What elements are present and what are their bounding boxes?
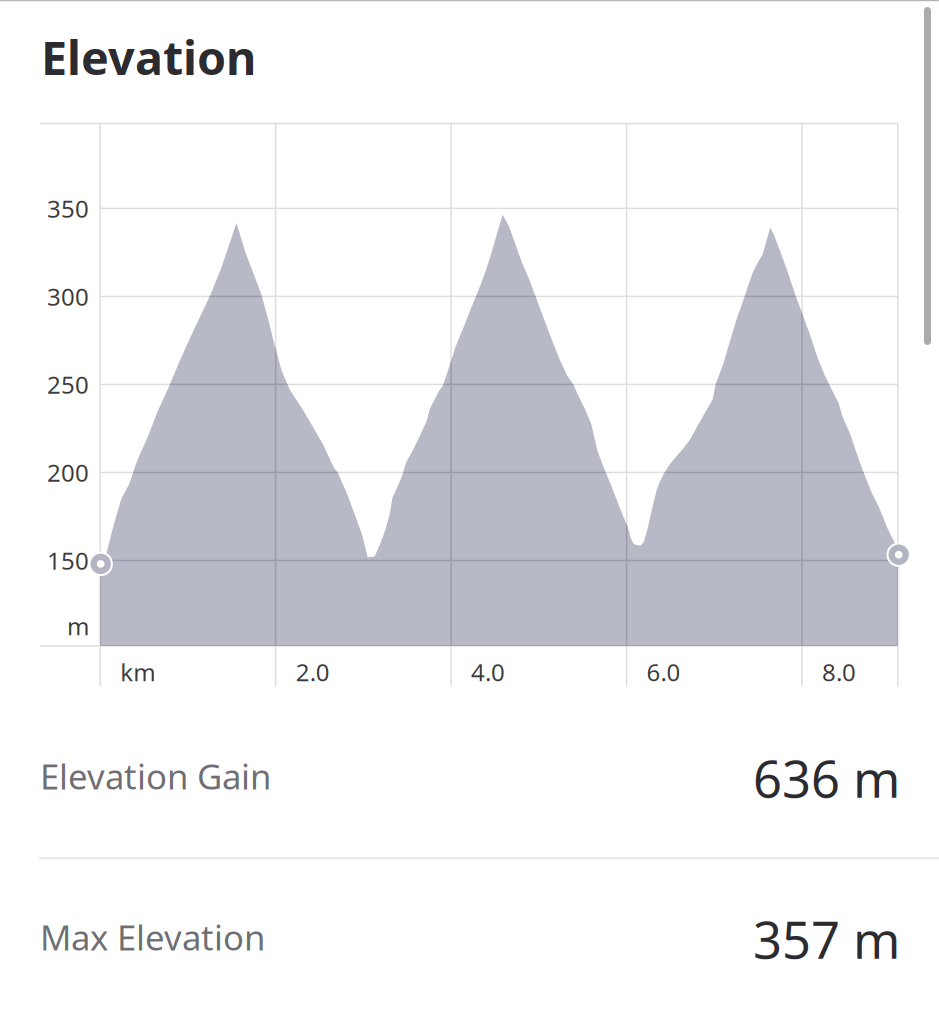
button[interactable]: Elevation Gain [40, 745, 900, 807]
staticText: 350 [47, 192, 89, 224]
staticText: Max Elevation [40, 914, 265, 960]
staticText: 636 m [753, 744, 900, 812]
staticText: Elevation [41, 26, 256, 88]
staticText: 6.0 [647, 656, 681, 688]
staticText: 150 [47, 545, 89, 576]
staticText: Elevation Gain [40, 753, 271, 799]
staticText: 357 m [753, 905, 900, 973]
staticText: 4.0 [471, 656, 505, 688]
staticText: 2.0 [296, 656, 330, 688]
staticText: 250 [47, 368, 89, 400]
staticText: 200 [47, 456, 89, 488]
staticText: m [67, 610, 89, 642]
staticText: 8.0 [822, 656, 856, 688]
button[interactable]: Max Elevation [40, 906, 900, 968]
staticText: 300 [47, 280, 89, 312]
staticText: km [120, 656, 155, 688]
